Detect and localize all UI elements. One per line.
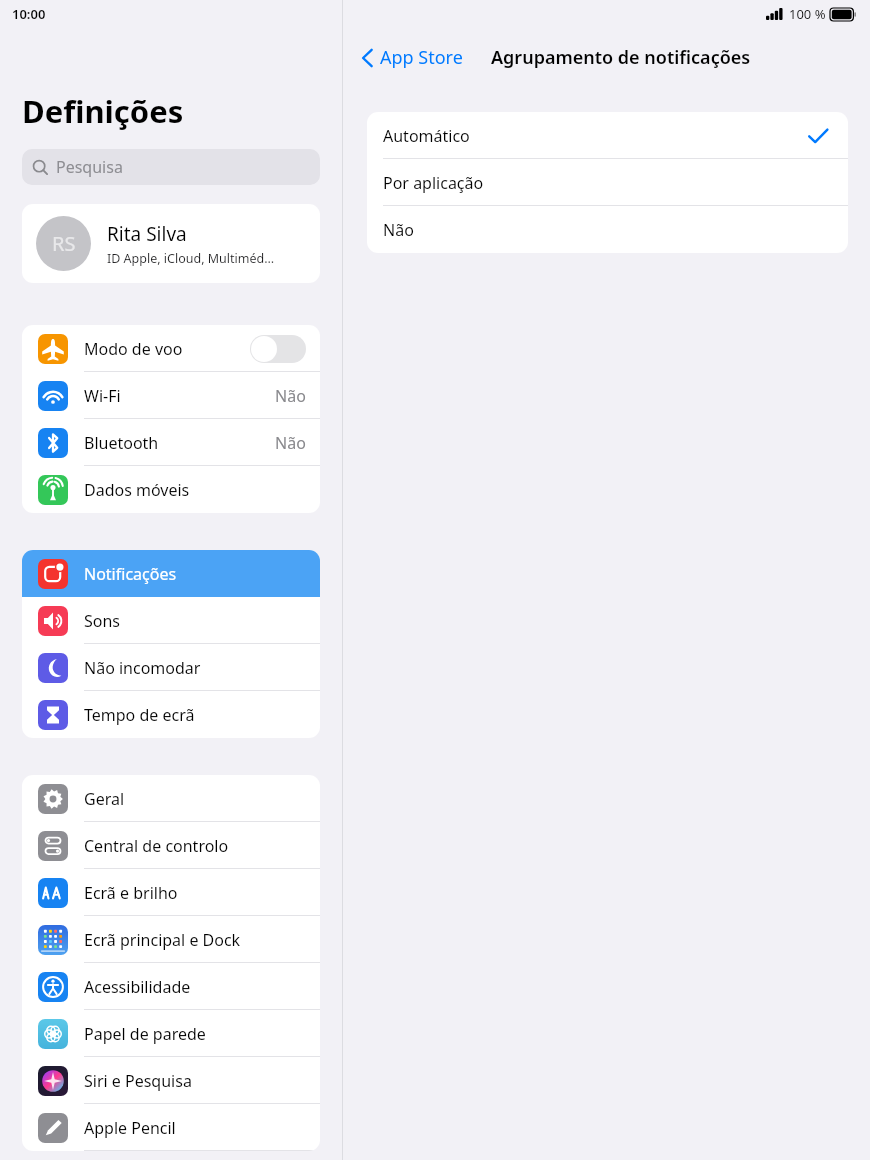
staticText: Acessibilidade <box>84 976 306 998</box>
staticText: Pesquisa <box>56 156 123 178</box>
staticText: Dados móveis <box>84 479 306 501</box>
button[interactable]: Por aplicação <box>367 159 848 206</box>
button[interactable]: Notificações <box>22 550 320 597</box>
button[interactable]: Geral <box>22 775 320 822</box>
button[interactable]: Pesquisa <box>22 149 320 185</box>
staticText: Definições <box>22 90 184 132</box>
button[interactable]: RS <box>22 204 320 283</box>
staticText: ID Apple, iCloud, Multiméd… <box>107 250 275 267</box>
staticText: 100 % <box>789 5 826 23</box>
staticText: Não incomodar <box>84 657 306 679</box>
staticText: Ecrã principal e Dock <box>84 929 306 951</box>
button[interactable]: Modo de voo <box>22 325 320 372</box>
staticText: Siri e Pesquisa <box>84 1070 306 1092</box>
button[interactable]: Central de controlo <box>22 822 320 869</box>
staticText: Ecrã e brilho <box>84 882 306 904</box>
staticText: Papel de parede <box>84 1023 306 1045</box>
button[interactable]: Bluetooth <box>22 419 320 466</box>
staticText: 10:00 <box>12 5 46 23</box>
staticText: Notificações <box>84 563 306 585</box>
staticText: Não <box>275 432 306 454</box>
button[interactable]: Ecrã principal e Dock <box>22 916 320 963</box>
button[interactable]: Acessibilidade <box>22 963 320 1010</box>
button[interactable]: Dados móveis <box>22 466 320 513</box>
staticText: Tempo de ecrã <box>84 704 306 726</box>
button[interactable]: Não <box>367 206 848 253</box>
staticText: Agrupamento de notificações <box>491 45 751 70</box>
button[interactable]: Não incomodar <box>22 644 320 691</box>
staticText: Apple Pencil <box>84 1117 306 1139</box>
button[interactable]: Papel de parede <box>22 1010 320 1057</box>
button[interactable]: Wi-Fi <box>22 372 320 419</box>
staticText: App Store <box>380 45 463 70</box>
button[interactable]: Modo de voo <box>250 335 306 363</box>
button[interactable]: Apple Pencil <box>22 1104 320 1151</box>
staticText: Não <box>275 385 306 407</box>
staticText: Geral <box>84 788 306 810</box>
button[interactable]: App Store <box>361 45 469 70</box>
staticText: Sons <box>84 610 306 632</box>
staticText: Não <box>383 219 828 241</box>
button[interactable]: Sons <box>22 597 320 644</box>
button[interactable]: Tempo de ecrã <box>22 691 320 738</box>
staticText: Bluetooth <box>84 432 275 454</box>
staticText: Central de controlo <box>84 835 306 857</box>
button[interactable]: Siri e Pesquisa <box>22 1057 320 1104</box>
staticText: Wi-Fi <box>84 385 275 407</box>
staticText: RS <box>52 230 76 257</box>
button[interactable]: Ecrã e brilho <box>22 869 320 916</box>
button[interactable]: Automático <box>367 112 848 159</box>
staticText: Rita Silva <box>107 221 187 247</box>
staticText: Automático <box>383 125 808 147</box>
staticText: Por aplicação <box>383 172 828 194</box>
staticText: Modo de voo <box>84 338 250 360</box>
